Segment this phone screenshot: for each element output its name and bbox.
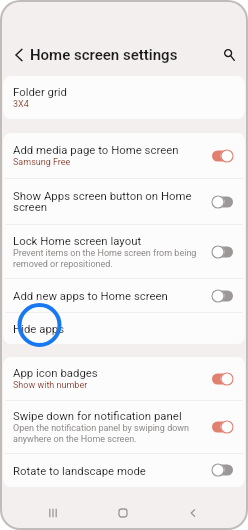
button[interactable]: Toggle: [212, 195, 234, 209]
button[interactable]: Home: [112, 502, 134, 524]
staticText: 3X4: [13, 99, 29, 110]
staticText: Lock Home screen layout: [13, 234, 142, 247]
button[interactable]: Back: [182, 502, 204, 524]
button[interactable]: Search: [217, 43, 241, 67]
button[interactable]: App icon badges: [3, 357, 245, 400]
button[interactable]: Hide apps: [3, 313, 245, 344]
staticText: Show Apps screen button on Home screen: [13, 189, 206, 214]
button[interactable]: Toggle: [212, 245, 234, 259]
button[interactable]: Lock Home screen layout: [3, 225, 245, 278]
button[interactable]: Toggle: [212, 420, 234, 434]
staticText: Hide apps: [13, 322, 65, 335]
staticText: Open the notification panel by swiping d…: [13, 423, 206, 445]
button[interactable]: Back: [7, 43, 31, 67]
button[interactable]: Toggle: [212, 463, 234, 477]
staticText: Samsung Free: [13, 157, 71, 168]
staticText: Show with number: [13, 380, 88, 391]
staticText: Home screen settings: [30, 46, 178, 64]
button[interactable]: Folder grid: [3, 76, 245, 119]
staticText: Add new apps to Home screen: [13, 289, 168, 302]
button[interactable]: Toggle: [212, 372, 234, 386]
button[interactable]: Show Apps screen button on Home screen: [3, 179, 245, 224]
staticText: App icon badges: [13, 366, 98, 379]
button[interactable]: Swipe down for notification panel: [3, 401, 245, 453]
staticText: Folder grid: [13, 85, 68, 98]
button[interactable]: Add media page to Home screen: [3, 133, 245, 178]
staticText: Prevent items on the Home screen from be…: [13, 248, 206, 270]
button[interactable]: Rotate to landscape mode: [3, 454, 245, 486]
staticText: Swipe down for notification panel: [13, 409, 182, 422]
staticText: Add media page to Home screen: [13, 143, 179, 156]
button[interactable]: Toggle: [212, 289, 234, 303]
staticText: Rotate to landscape mode: [13, 464, 146, 477]
button[interactable]: Add new apps to Home screen: [3, 279, 245, 312]
button[interactable]: Recents: [42, 502, 64, 524]
button[interactable]: Toggle: [212, 149, 234, 163]
